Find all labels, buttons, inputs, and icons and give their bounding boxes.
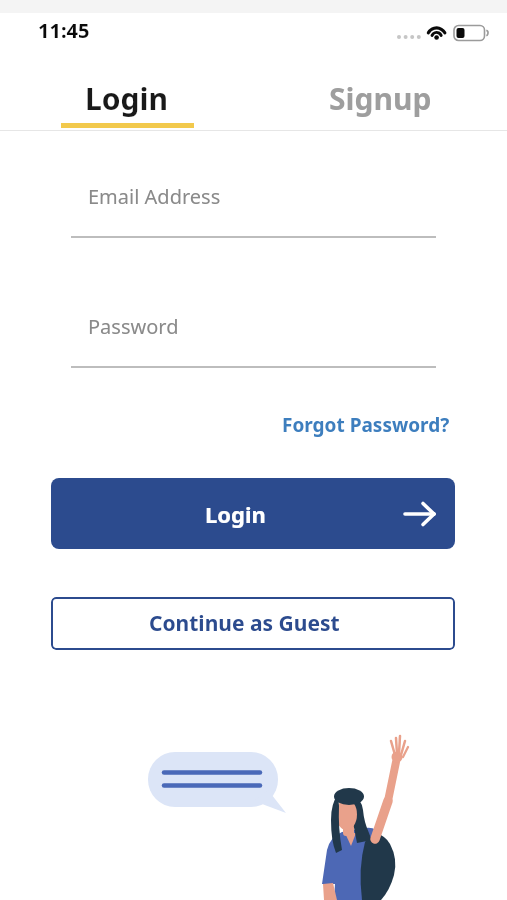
staticText: 11:45 — [38, 17, 90, 44]
staticText: Forgot Password? — [282, 412, 450, 438]
button[interactable]: Login — [51, 478, 455, 549]
staticText: Login — [205, 499, 266, 529]
button[interactable]: Password — [71, 310, 436, 339]
staticText: Login — [85, 78, 168, 119]
button[interactable]: Forgot Password? — [277, 409, 450, 441]
button[interactable]: Email Address — [71, 180, 436, 209]
staticText: Continue as Guest — [149, 609, 340, 638]
button[interactable]: Login — [0, 76, 253, 120]
staticText: Password — [88, 313, 179, 340]
button[interactable]: Signup — [253, 76, 507, 120]
staticText: Email Address — [88, 183, 221, 210]
button[interactable]: Continue as Guest — [51, 597, 455, 650]
staticText: Signup — [329, 78, 432, 119]
